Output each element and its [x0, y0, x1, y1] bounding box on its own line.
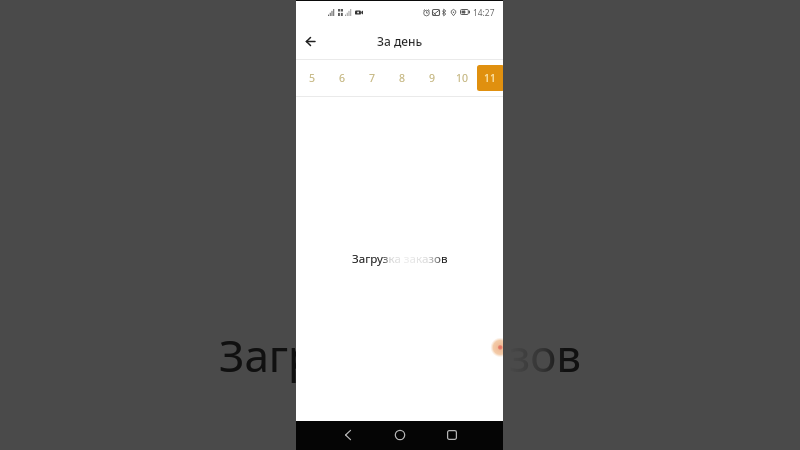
staticText: 8: [399, 71, 406, 85]
button[interactable]: 8: [387, 65, 417, 91]
button[interactable]: 10: [447, 65, 477, 91]
staticText: За день: [377, 33, 423, 49]
staticText: 11: [484, 71, 497, 85]
button[interactable]: 5: [297, 65, 327, 91]
staticText: 6: [339, 71, 346, 85]
button[interactable]: 6: [327, 65, 357, 91]
staticText: 10: [456, 71, 469, 85]
button[interactable]: 7: [357, 65, 387, 91]
staticText: 7: [369, 71, 376, 85]
button[interactable]: Recent apps: [442, 425, 462, 445]
button[interactable]: Home: [390, 425, 410, 445]
staticText: 5: [309, 71, 316, 85]
staticText: Загрузка заказов: [219, 325, 582, 385]
button[interactable]: Back: [338, 425, 358, 445]
staticText: 14:27: [473, 7, 495, 18]
button[interactable]: 9: [417, 65, 447, 91]
button[interactable]: Загрузка заказов: [296, 97, 503, 421]
button[interactable]: Назад: [299, 30, 321, 52]
button[interactable]: 11: [477, 65, 503, 91]
staticText: 9: [429, 71, 436, 85]
staticText: Загрузка заказов: [352, 251, 448, 267]
